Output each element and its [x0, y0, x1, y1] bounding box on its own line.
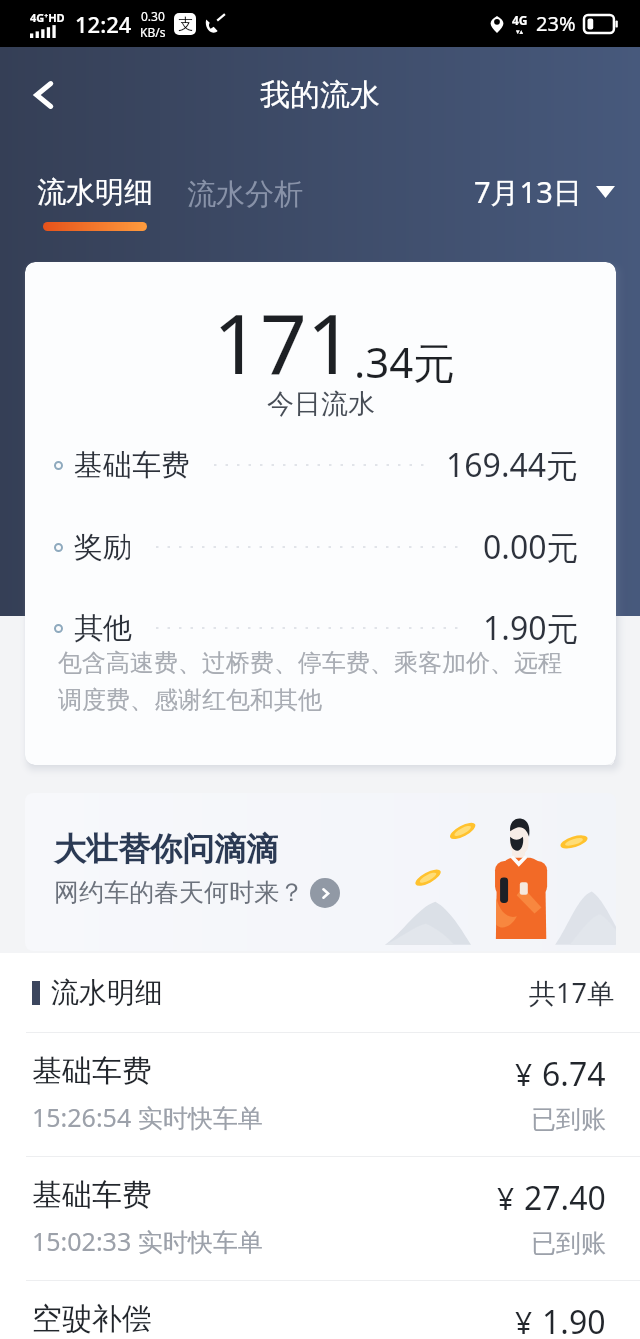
staticText: 23% [536, 10, 576, 37]
staticText: 0.00元 [483, 525, 579, 569]
button[interactable]: 大壮替你问滴滴 [25, 793, 616, 951]
staticText: 基础车费 [32, 1052, 152, 1090]
staticText: 15:26:54 实时快车单 [32, 1100, 263, 1134]
staticText: 网约车的春天何时来？ [54, 877, 304, 908]
staticText: 我的流水 [260, 76, 380, 114]
staticText: ¥ [497, 1178, 515, 1219]
staticText: 基础车费 [32, 1176, 152, 1214]
button[interactable]: 空驶补偿 [0, 1281, 640, 1339]
staticText: 1.90元 [483, 606, 579, 650]
staticText: ▾▴ [516, 28, 524, 36]
staticText: KB/s [140, 24, 166, 40]
button[interactable]: Back [18, 69, 70, 121]
staticText: 流水明细 [37, 174, 153, 211]
staticText: 171 [213, 286, 354, 391]
button[interactable]: 流水明细 [37, 174, 153, 235]
staticText: 15:02:33 实时快车单 [32, 1224, 263, 1258]
staticText: .34元 [354, 333, 456, 390]
staticText: 4G [512, 12, 528, 28]
staticText: 6.74 [542, 1052, 606, 1096]
staticText: 流水明细 [51, 975, 163, 1010]
staticText: 已到账 [531, 1104, 606, 1135]
staticText: 27.40 [524, 1176, 606, 1220]
staticText: 0.30 [141, 8, 165, 24]
staticText: 4G⁺HD [30, 10, 65, 25]
staticText: 今日流水 [267, 387, 375, 421]
button[interactable]: 查看详情 [310, 878, 340, 908]
staticText: 奖励 [74, 529, 132, 566]
staticText: 流水分析 [187, 176, 303, 213]
staticText: ¥ [515, 1302, 533, 1339]
staticText: 1.90 [542, 1300, 606, 1339]
staticText: 7月13日 [474, 172, 582, 212]
button[interactable]: 基础车费 [0, 1157, 640, 1280]
staticText: ¥ [515, 1054, 533, 1095]
staticText: 共17单 [529, 974, 614, 1011]
button[interactable]: 7月13日 [474, 172, 615, 212]
staticText: 空驶补偿 [32, 1300, 152, 1338]
staticText: 已到账 [531, 1228, 606, 1259]
staticText: 包含高速费、过桥费、停车费、乘客加价、远程 调度费、感谢红包和其他 [58, 648, 562, 715]
button[interactable]: 基础车费 [0, 1033, 640, 1156]
staticText: 其他 [74, 610, 132, 647]
staticText: 12:24 [75, 9, 132, 39]
button[interactable]: 流水分析 [187, 174, 303, 239]
staticText: 169.44元 [446, 443, 579, 487]
staticText: 支 [178, 15, 193, 34]
button[interactable]: 流水明细 [0, 953, 640, 1032]
staticText: 大壮替你问滴滴 [54, 829, 278, 869]
staticText: 基础车费 [74, 447, 190, 484]
